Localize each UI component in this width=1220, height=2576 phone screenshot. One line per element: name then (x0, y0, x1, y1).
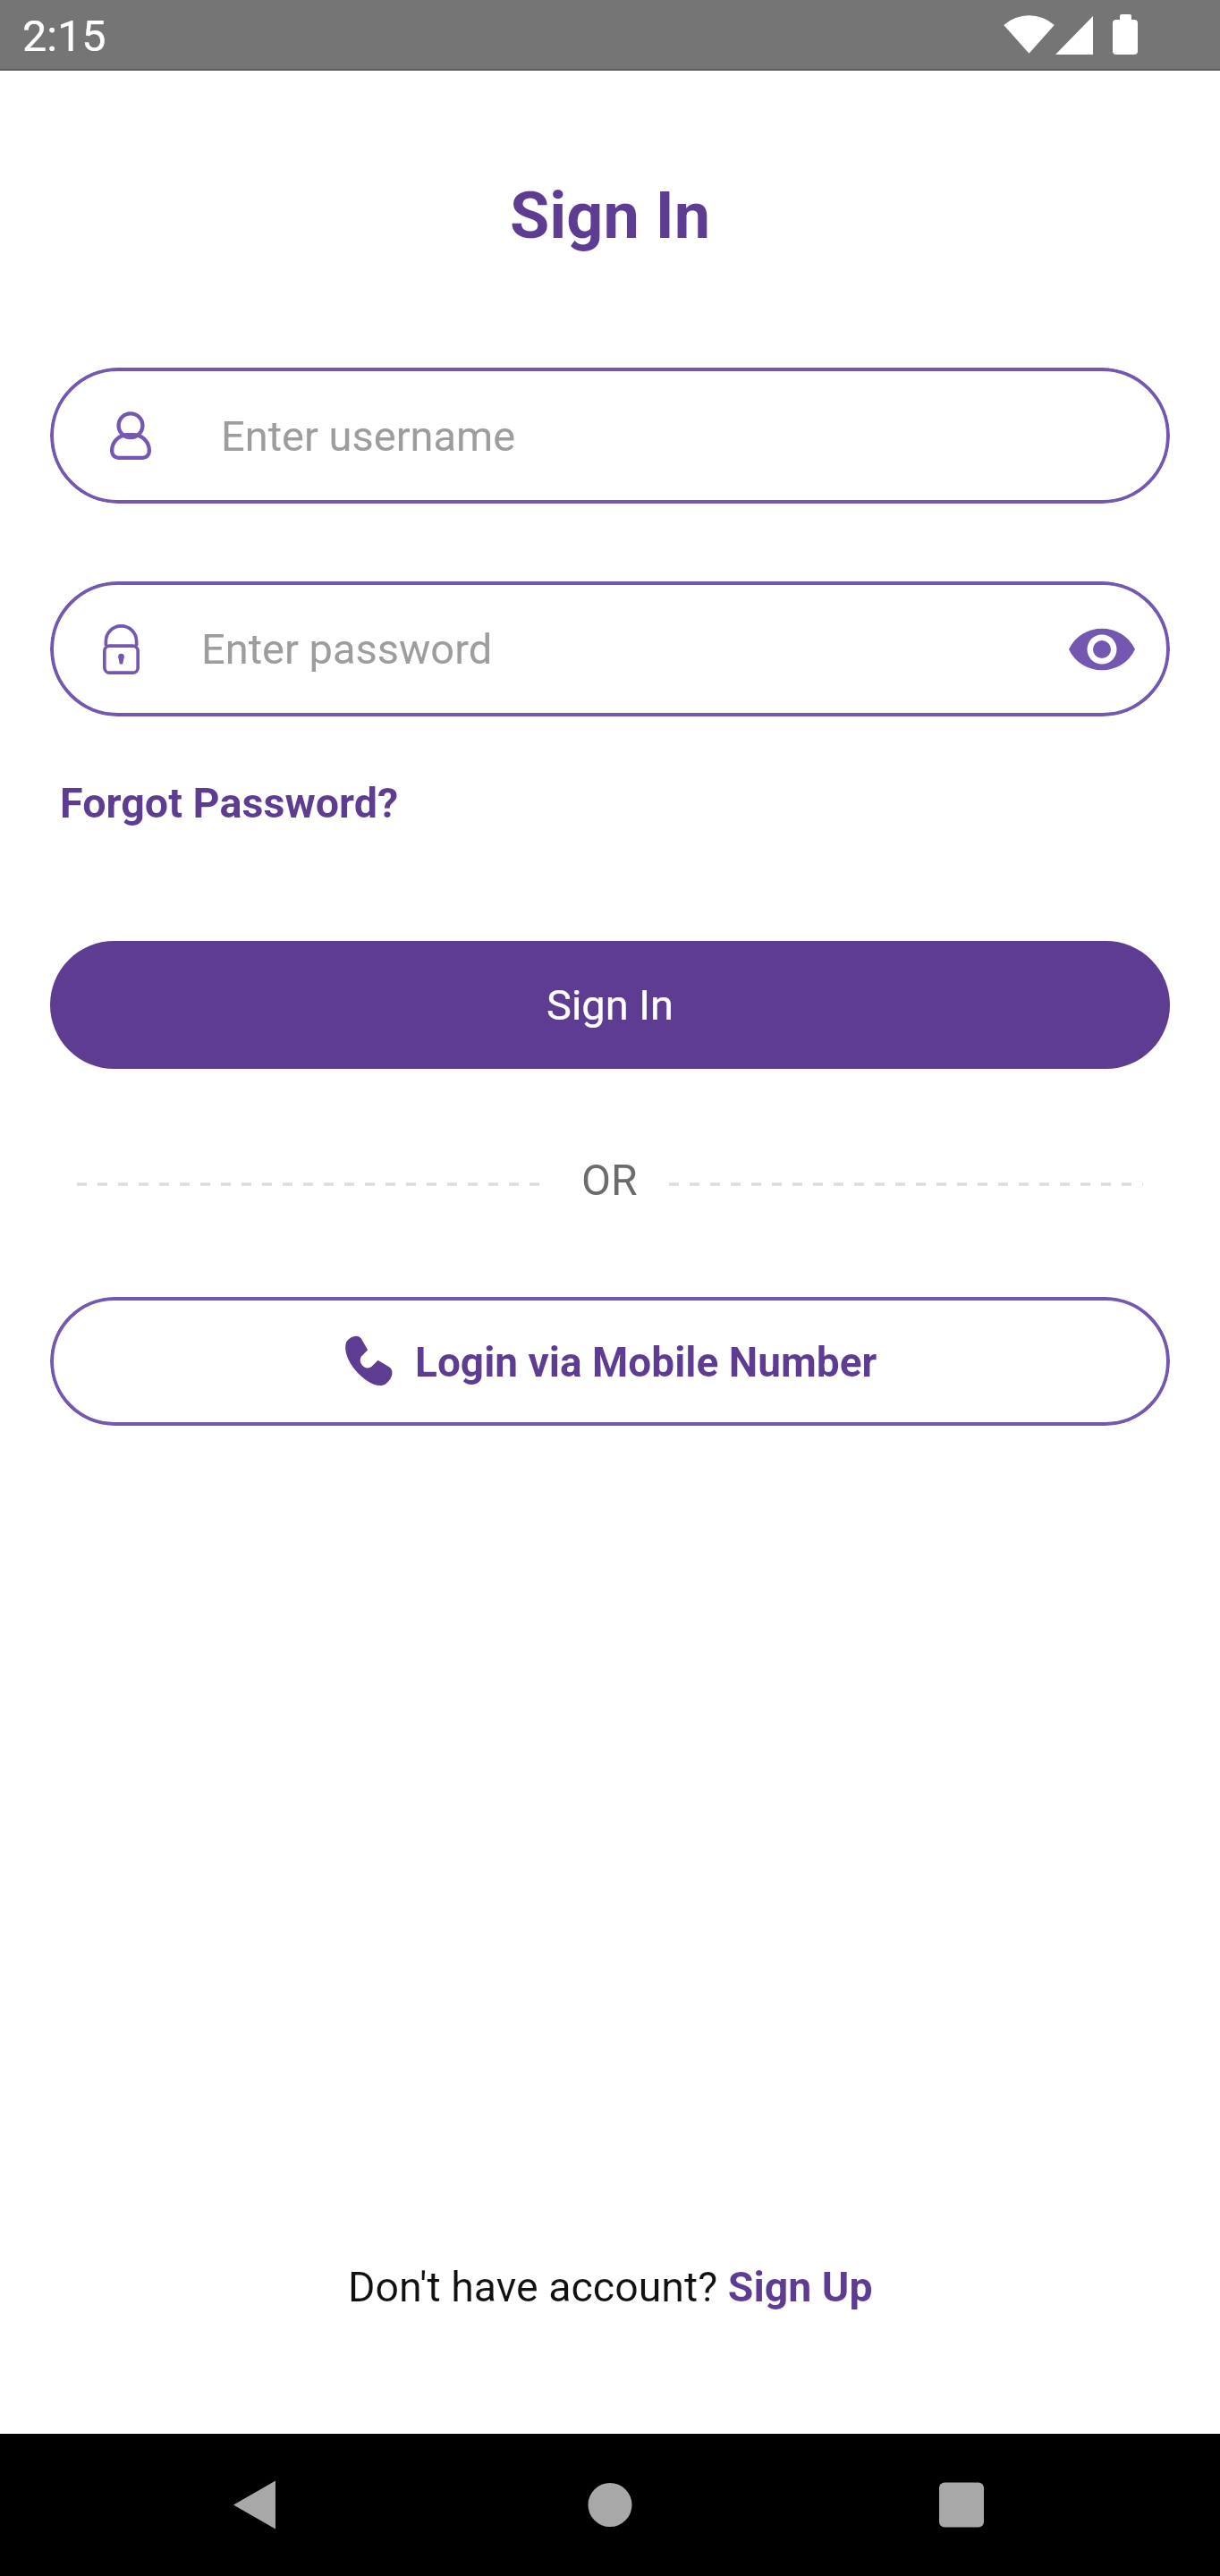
staticText: Enter username (221, 411, 516, 461)
button[interactable]: Home (565, 2434, 1220, 2576)
staticText: Login via Mobile Number (415, 1338, 877, 1386)
staticText: Sign In (546, 980, 674, 1030)
staticText: 2:15 (22, 11, 106, 62)
button[interactable]: Forgot Password? (60, 779, 399, 828)
button[interactable]: Sign In (50, 941, 1170, 1069)
button[interactable]: Back (209, 2434, 1220, 2576)
button[interactable]: Enter username (50, 368, 1170, 504)
button[interactable]: Login via Mobile Number (50, 1297, 1170, 1426)
staticText: Sign In (0, 178, 1220, 253)
button[interactable]: Enter password (50, 581, 1170, 716)
button[interactable]: Don't have account? Sign Up (348, 2263, 873, 2311)
button[interactable]: Recent apps (917, 2434, 1220, 2576)
staticText: OR (581, 1155, 638, 1205)
staticText: Enter password (201, 624, 493, 674)
button[interactable]: Show password (1053, 600, 1151, 699)
